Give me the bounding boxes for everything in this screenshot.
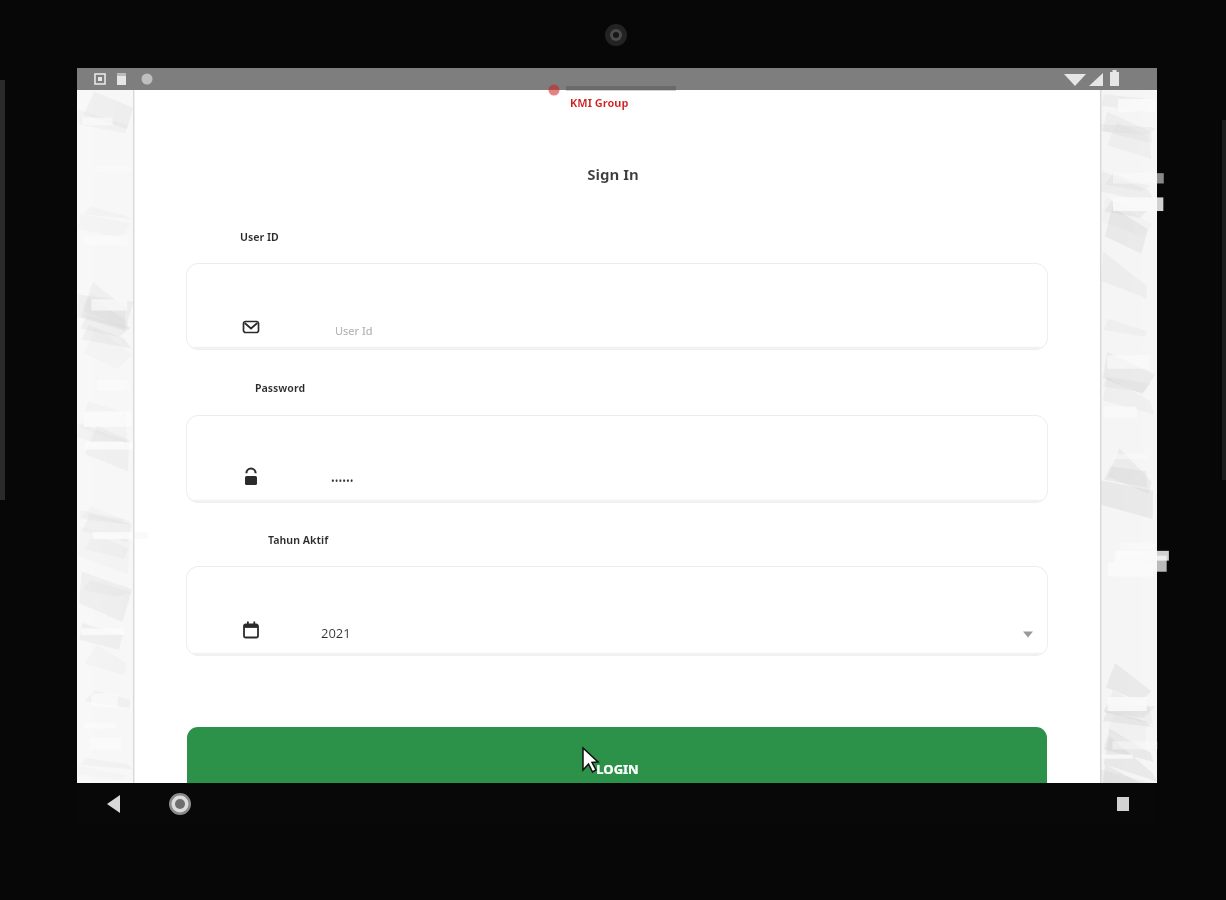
staticText: 2021 [321, 624, 351, 642]
button[interactable]: LOGIN [187, 727, 1047, 807]
button[interactable]: Home [162, 786, 198, 822]
staticText: Sign In [587, 164, 639, 184]
staticText: Password [255, 381, 306, 395]
staticText: User Id [335, 323, 373, 338]
button[interactable]: Recent apps [1105, 786, 1141, 822]
staticText: •••••• [331, 474, 354, 488]
button[interactable]: Password field [186, 415, 1048, 503]
button[interactable]: User ID field [186, 263, 1048, 350]
staticText: Tahun Aktif [268, 533, 329, 547]
staticText: LOGIN [596, 760, 639, 778]
button[interactable]: Tahun Aktif dropdown [186, 566, 1048, 656]
staticText: User ID [240, 230, 279, 244]
staticText: KMI Group [570, 95, 629, 110]
button[interactable]: Back [96, 786, 132, 822]
